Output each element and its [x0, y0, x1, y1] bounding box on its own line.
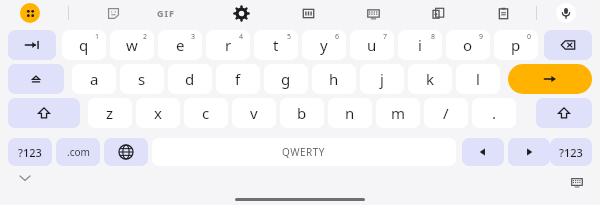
button[interactable]: s — [120, 64, 164, 94]
button[interactable]: p — [494, 30, 538, 60]
staticText: s — [138, 69, 146, 89]
button[interactable]: r — [206, 30, 250, 60]
button[interactable]: g — [264, 64, 308, 94]
staticText: j — [380, 69, 384, 89]
staticText: u — [367, 35, 377, 55]
button[interactable]: e — [158, 30, 202, 60]
button[interactable]: Backspace — [544, 30, 592, 60]
staticText: .com — [67, 145, 90, 159]
button[interactable]: h — [312, 64, 356, 94]
staticText: y — [320, 35, 328, 55]
staticText: 0 — [527, 32, 532, 42]
staticText: o — [463, 35, 473, 55]
staticText: h — [329, 69, 339, 89]
button[interactable]: ?123 — [550, 138, 592, 166]
button[interactable]: Stickers — [100, 0, 126, 26]
staticText: t — [273, 35, 279, 55]
button[interactable]: u — [350, 30, 394, 60]
button[interactable]: Move cursor left — [462, 138, 504, 166]
staticText: q — [79, 35, 89, 55]
button[interactable]: v — [232, 98, 276, 128]
staticText: n — [345, 103, 355, 123]
staticText: f — [235, 69, 241, 89]
staticText: x — [154, 103, 162, 123]
button[interactable]: b — [280, 98, 324, 128]
button[interactable]: Toolbar menu — [20, 3, 40, 23]
staticText: 9 — [479, 32, 484, 42]
button[interactable]: z — [88, 98, 132, 128]
staticText: e — [176, 35, 185, 55]
staticText: r — [225, 35, 232, 55]
button[interactable]: n — [328, 98, 372, 128]
button[interactable]: m — [376, 98, 420, 128]
staticText: GIF — [157, 7, 175, 19]
staticText: QWERTY — [282, 145, 326, 159]
button[interactable]: x — [136, 98, 180, 128]
staticText: c — [202, 103, 210, 123]
button[interactable]: j — [360, 64, 404, 94]
button[interactable]: Voice input — [556, 3, 576, 23]
button[interactable]: Screenshot text — [425, 0, 451, 26]
staticText: ?123 — [18, 145, 42, 160]
staticText: 5 — [287, 32, 292, 42]
button[interactable]: QWERTY — [152, 138, 456, 166]
button[interactable]: Hide keyboard — [16, 169, 34, 187]
button[interactable]: Change language — [104, 138, 148, 166]
staticText: 4 — [239, 32, 244, 42]
staticText: l — [476, 69, 480, 89]
button[interactable]: Tab — [8, 30, 56, 60]
button[interactable]: Shift — [536, 98, 592, 128]
staticText: v — [250, 103, 258, 123]
button[interactable]: .com — [56, 138, 100, 166]
staticText: 3 — [191, 32, 196, 42]
button[interactable]: Translate — [295, 0, 321, 26]
staticText: k — [426, 69, 435, 89]
button[interactable]: w — [110, 30, 154, 60]
button[interactable]: Switch keyboard — [568, 173, 586, 191]
staticText: / — [443, 103, 449, 123]
staticText: b — [297, 103, 307, 123]
button[interactable]: Shift — [8, 98, 80, 128]
button[interactable]: Settings — [228, 0, 254, 26]
button[interactable]: a — [72, 64, 116, 94]
staticText: p — [511, 35, 521, 55]
button[interactable]: d — [168, 64, 212, 94]
button[interactable]: i — [398, 30, 442, 60]
button[interactable]: Caps lock — [8, 64, 64, 94]
staticText: 7 — [383, 32, 388, 42]
staticText: m — [391, 103, 406, 123]
button[interactable]: c — [184, 98, 228, 128]
staticText: ?123 — [559, 145, 583, 160]
staticText: 8 — [431, 32, 436, 42]
button[interactable]: Clipboard — [490, 0, 516, 26]
button[interactable]: y — [302, 30, 346, 60]
staticText: . — [492, 103, 497, 123]
staticText: d — [185, 69, 195, 89]
staticText: i — [418, 35, 422, 55]
button[interactable]: Enter — [508, 64, 592, 94]
button[interactable]: Move cursor right — [508, 138, 550, 166]
staticText: g — [281, 69, 291, 89]
button[interactable]: o — [446, 30, 490, 60]
staticText: 1 — [95, 32, 100, 42]
staticText: 2 — [143, 32, 148, 42]
button[interactable]: ?123 — [8, 138, 52, 166]
staticText: w — [126, 35, 138, 55]
staticText: a — [90, 69, 99, 89]
button[interactable]: l — [456, 64, 500, 94]
button[interactable]: t — [254, 30, 298, 60]
staticText: 6 — [335, 32, 340, 42]
button[interactable]: Mini keyboard — [360, 0, 386, 26]
staticText: z — [106, 103, 114, 123]
button[interactable]: f — [216, 64, 260, 94]
button[interactable]: GIF — [152, 0, 180, 26]
button[interactable]: / — [424, 98, 468, 128]
button[interactable]: GIF — [166, 0, 192, 26]
button[interactable]: k — [408, 64, 452, 94]
button[interactable]: q — [62, 30, 106, 60]
button[interactable]: . — [472, 98, 516, 128]
